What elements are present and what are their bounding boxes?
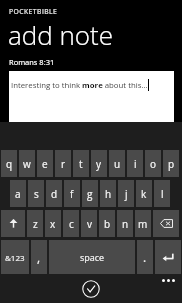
staticText: f [70, 187, 74, 201]
button[interactable]: t [73, 150, 89, 177]
button[interactable]: b [99, 210, 115, 237]
staticText: d [51, 187, 58, 201]
button[interactable]: w [19, 150, 35, 177]
button[interactable]: y [91, 150, 107, 177]
button[interactable]: u [109, 150, 125, 177]
staticText: n [122, 217, 129, 231]
staticText: w [23, 157, 31, 171]
staticText: z [33, 217, 38, 231]
button[interactable]: space [49, 240, 135, 274]
button[interactable]: j [118, 180, 134, 207]
staticText: m [138, 217, 148, 231]
button[interactable]: Accept [82, 280, 100, 298]
staticText: h [105, 187, 112, 201]
staticText: s [34, 187, 39, 201]
button[interactable]: x [45, 210, 61, 237]
staticText: Interesting to think more about this… [11, 80, 148, 91]
staticText: o [150, 157, 157, 171]
button[interactable]: g [82, 180, 98, 207]
button[interactable]: n [117, 210, 133, 237]
button[interactable]: a [10, 180, 26, 207]
button[interactable]: d [46, 180, 62, 207]
button[interactable]: q [1, 150, 17, 177]
button[interactable]: f [64, 180, 80, 207]
staticText: &123 [5, 252, 25, 263]
button[interactable]: More options [162, 279, 175, 282]
button[interactable]: v [81, 210, 97, 237]
button[interactable]: c [63, 210, 79, 237]
staticText: k [141, 187, 147, 201]
staticText: q [6, 157, 13, 171]
button[interactable]: . [137, 240, 153, 274]
button[interactable]: h [100, 180, 116, 207]
button[interactable]: &123 [1, 240, 29, 274]
staticText: l [161, 187, 164, 201]
button[interactable]: , [31, 240, 47, 274]
staticText: c [69, 217, 74, 231]
staticText: p [168, 157, 175, 171]
staticText: b [104, 217, 111, 231]
button[interactable]: r [55, 150, 71, 177]
button[interactable]: p [163, 150, 179, 177]
button[interactable]: i [127, 150, 143, 177]
staticText: . [143, 249, 147, 265]
button[interactable]: Enter [155, 240, 181, 274]
button[interactable]: s [28, 180, 44, 207]
staticText: Romans 8:31 [9, 57, 55, 67]
staticText: r [61, 157, 66, 171]
button[interactable]: o [145, 150, 161, 177]
staticText: POCKETBIBLE [9, 7, 58, 16]
staticText: a [15, 187, 21, 201]
staticText: , [37, 249, 41, 265]
staticText: space [80, 251, 105, 263]
button[interactable]: Shift [1, 210, 25, 237]
staticText: u [114, 157, 121, 171]
staticText: y [96, 157, 102, 171]
staticText: t [79, 157, 83, 171]
button[interactable]: l [154, 180, 170, 207]
staticText: add note [8, 17, 114, 52]
staticText: v [87, 217, 92, 231]
button[interactable]: k [136, 180, 152, 207]
staticText: g [87, 187, 93, 201]
staticText: e [42, 157, 48, 171]
button[interactable]: Backspace [153, 210, 179, 237]
button[interactable]: m [135, 210, 151, 237]
button[interactable]: z [27, 210, 43, 237]
button[interactable]: e [37, 150, 53, 177]
staticText: x [50, 217, 56, 231]
button[interactable]: Interesting to think more about this… [9, 71, 174, 123]
staticText: j [125, 187, 128, 201]
staticText: i [134, 157, 137, 171]
